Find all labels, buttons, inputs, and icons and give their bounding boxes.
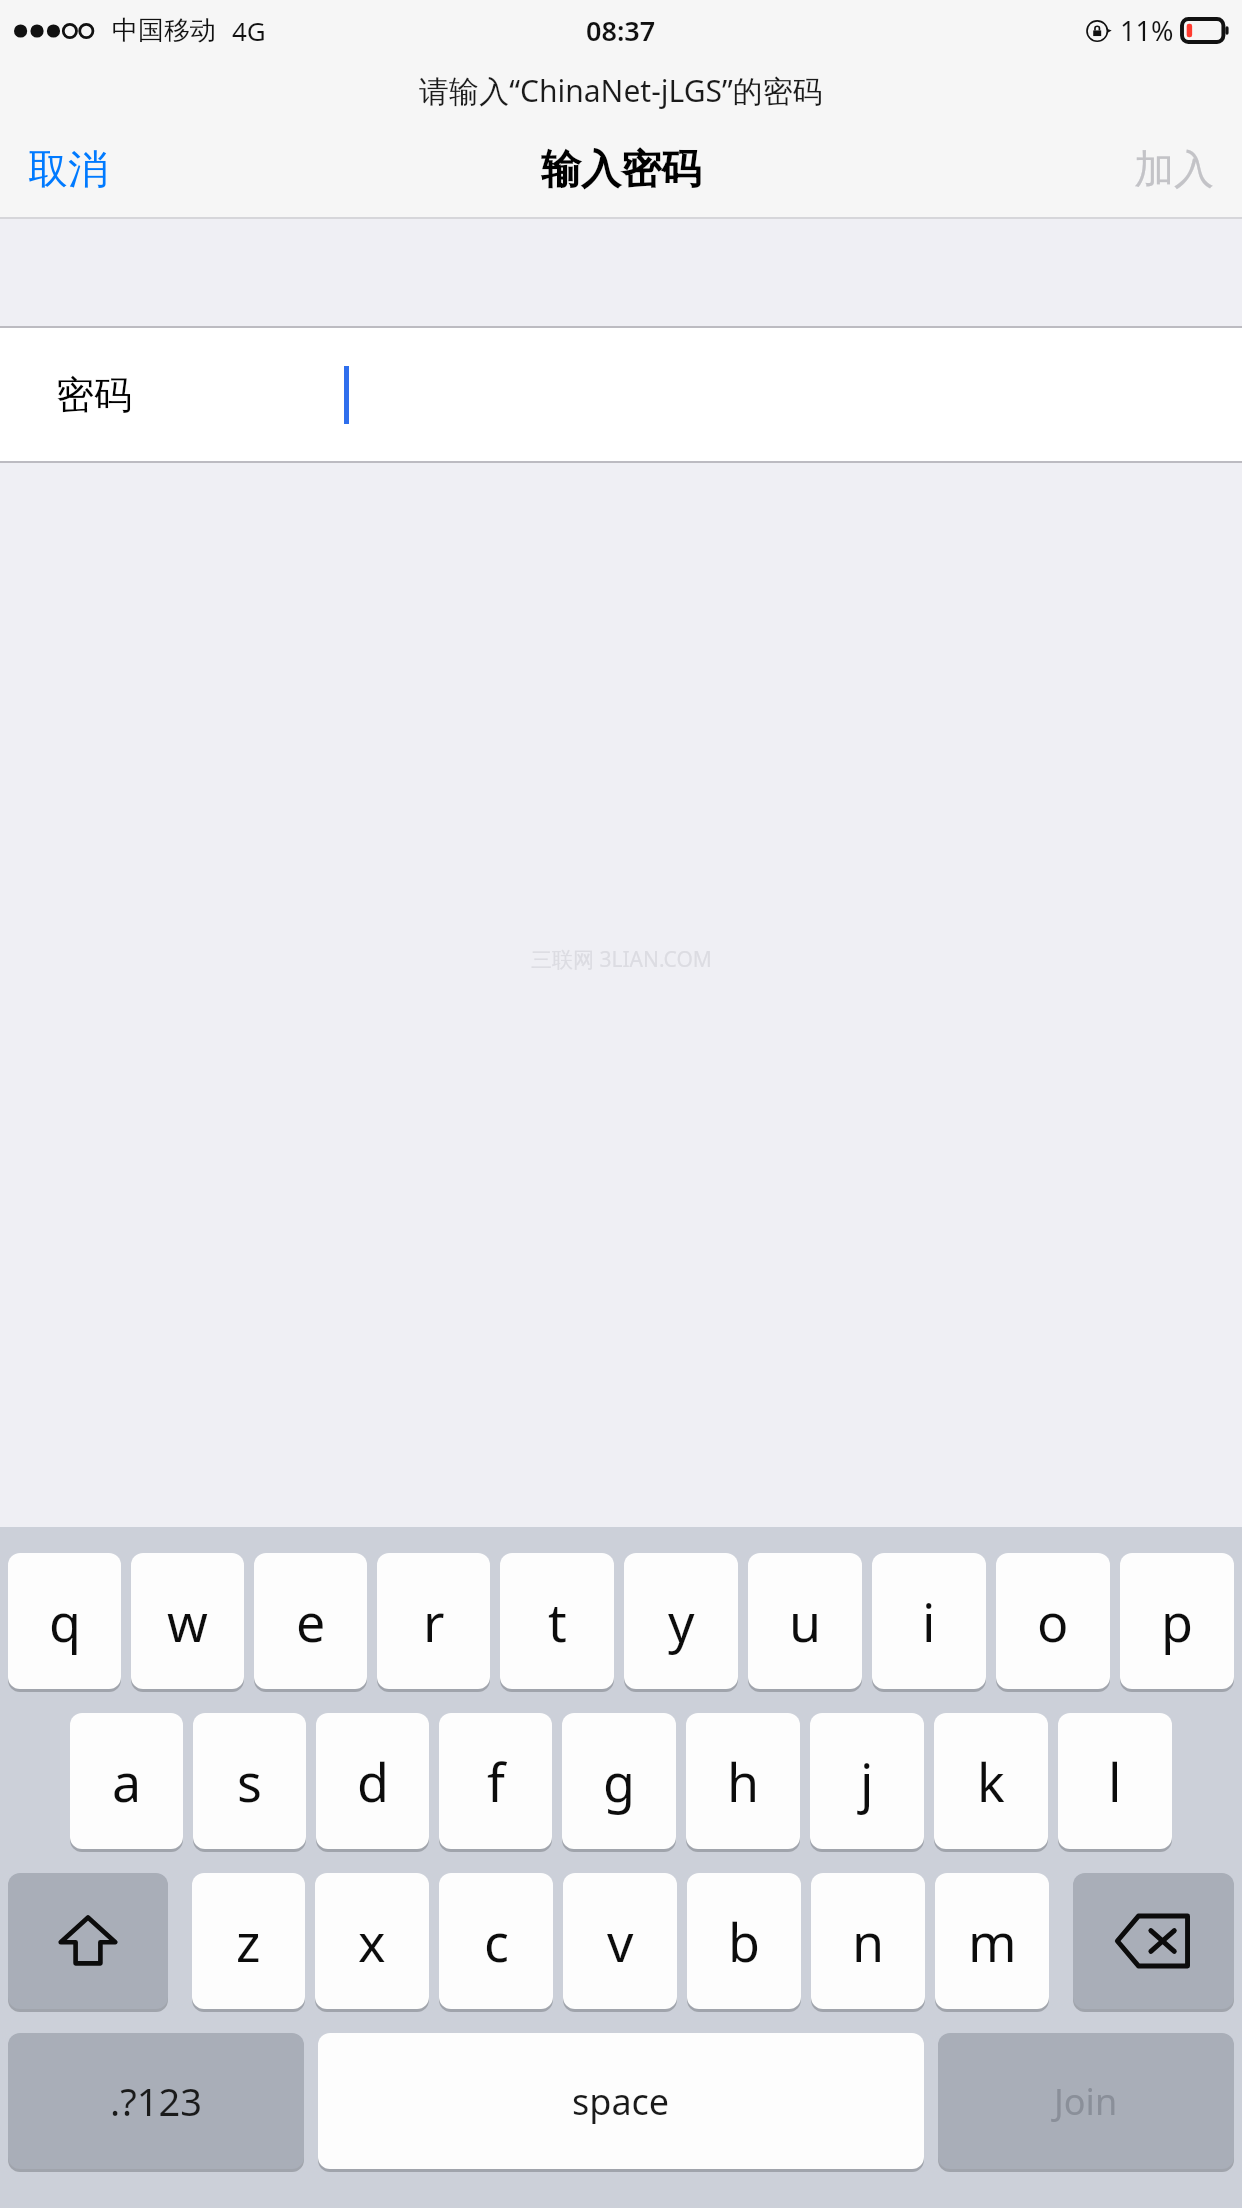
button[interactable]: Backspace: [1073, 1873, 1234, 2009]
staticText: v: [607, 1906, 634, 1977]
staticText: e: [296, 1586, 326, 1657]
staticText: p: [1161, 1586, 1193, 1657]
button[interactable]: j: [810, 1713, 924, 1849]
staticText: 密码: [56, 371, 132, 419]
staticText: s: [237, 1746, 262, 1817]
staticText: z: [236, 1906, 261, 1977]
button[interactable]: i: [872, 1553, 986, 1689]
button[interactable]: p: [1120, 1553, 1234, 1689]
button[interactable]: 加入: [1106, 128, 1242, 210]
staticText: b: [728, 1906, 760, 1977]
button[interactable]: y: [624, 1553, 738, 1689]
button[interactable]: a: [70, 1713, 183, 1849]
button[interactable]: .?123: [8, 2033, 304, 2169]
staticText: o: [1037, 1586, 1069, 1657]
button[interactable]: b: [687, 1873, 801, 2009]
button[interactable]: m: [935, 1873, 1049, 2009]
button[interactable]: q: [8, 1553, 121, 1689]
staticText: k: [977, 1746, 1005, 1817]
staticText: a: [112, 1746, 142, 1817]
staticText: space: [572, 2077, 670, 2126]
staticText: x: [358, 1906, 386, 1977]
button[interactable]: Join: [938, 2033, 1234, 2169]
staticText: .?123: [110, 2075, 202, 2127]
staticText: 11%: [1120, 12, 1174, 49]
staticText: d: [357, 1746, 389, 1817]
staticText: 加入: [1134, 144, 1214, 194]
button[interactable]: h: [686, 1713, 800, 1849]
staticText: 08:37: [586, 12, 656, 49]
button[interactable]: t: [500, 1553, 614, 1689]
button[interactable]: s: [193, 1713, 306, 1849]
button[interactable]: x: [315, 1873, 429, 2009]
button[interactable]: d: [316, 1713, 429, 1849]
staticText: Join: [1054, 2077, 1118, 2126]
button[interactable]: v: [563, 1873, 677, 2009]
staticText: 输入密码: [541, 144, 701, 194]
staticText: m: [968, 1906, 1017, 1977]
staticText: g: [603, 1746, 635, 1817]
staticText: n: [852, 1906, 885, 1977]
button[interactable]: l: [1058, 1713, 1172, 1849]
staticText: 中国移动: [112, 14, 216, 47]
staticText: r: [423, 1586, 445, 1657]
staticText: 取消: [28, 144, 108, 194]
staticText: 请输入“ChinaNet-jLGS”的密码: [419, 70, 823, 111]
staticText: i: [922, 1586, 936, 1657]
button[interactable]: Shift: [8, 1873, 168, 2009]
button[interactable]: 密码: [0, 328, 1242, 461]
staticText: 三联网 3LIAN.COM: [531, 945, 712, 974]
button[interactable]: g: [562, 1713, 676, 1849]
staticText: l: [1108, 1746, 1122, 1817]
staticText: u: [789, 1586, 822, 1657]
button[interactable]: o: [996, 1553, 1110, 1689]
staticText: 4G: [232, 13, 266, 48]
staticText: q: [49, 1586, 81, 1657]
button[interactable]: r: [377, 1553, 490, 1689]
staticText: t: [548, 1586, 567, 1657]
button[interactable]: 取消: [0, 128, 136, 210]
staticText: h: [727, 1746, 760, 1817]
button[interactable]: k: [934, 1713, 1048, 1849]
button[interactable]: u: [748, 1553, 862, 1689]
button[interactable]: w: [131, 1553, 244, 1689]
staticText: w: [167, 1586, 208, 1657]
button[interactable]: space: [318, 2033, 924, 2169]
staticText: y: [668, 1586, 695, 1657]
staticText: j: [860, 1746, 874, 1817]
button[interactable]: c: [439, 1873, 553, 2009]
button[interactable]: e: [254, 1553, 367, 1689]
staticText: f: [487, 1746, 505, 1817]
staticText: c: [484, 1906, 509, 1977]
button[interactable]: n: [811, 1873, 925, 2009]
button[interactable]: z: [192, 1873, 305, 2009]
button[interactable]: f: [439, 1713, 552, 1849]
